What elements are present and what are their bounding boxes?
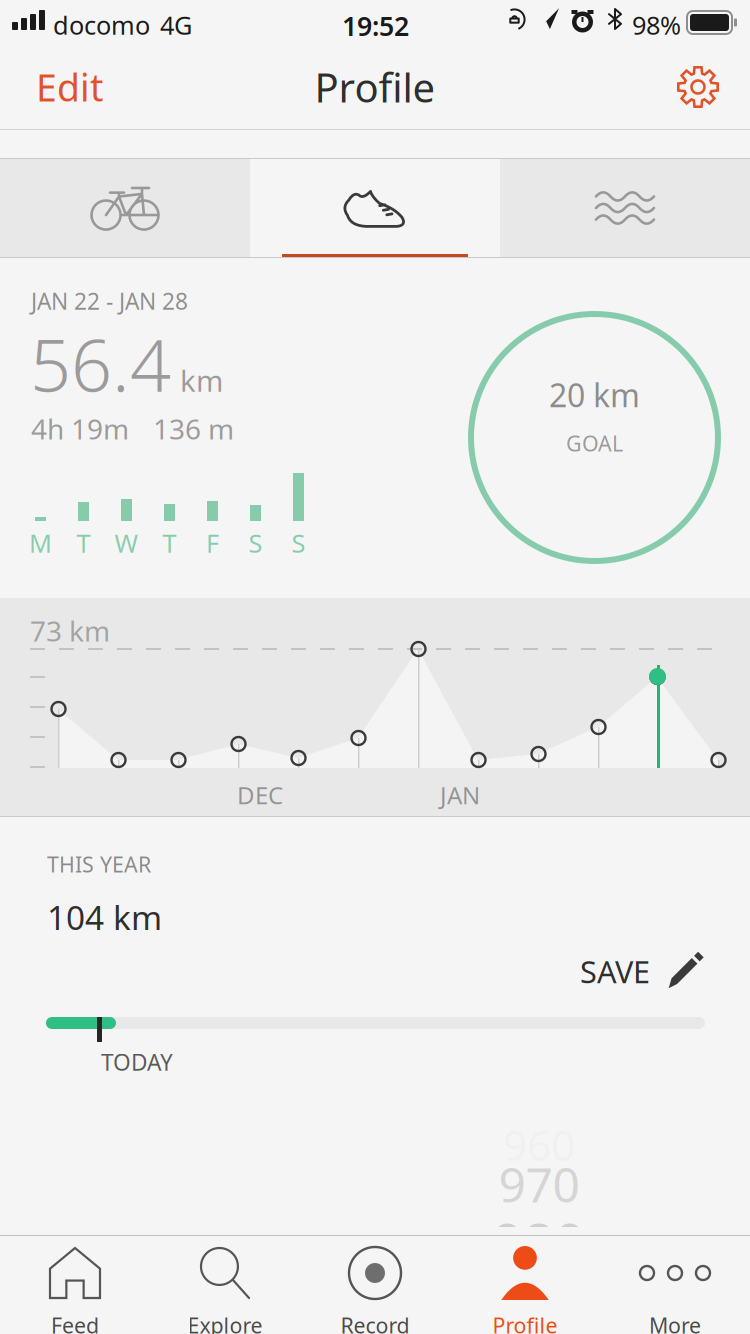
staticText: Record: [340, 1311, 409, 1334]
button[interactable]: Swimming: [500, 158, 750, 258]
staticText: T: [162, 526, 176, 560]
button[interactable]: SAVE: [568, 941, 715, 1002]
staticText: 136 m: [153, 410, 234, 447]
staticText: More: [649, 1311, 701, 1334]
staticText: Edit: [36, 62, 103, 112]
staticText: Feed: [51, 1311, 99, 1334]
staticText: S: [248, 526, 262, 560]
staticText: Profile: [314, 60, 435, 113]
button[interactable]: Settings: [654, 44, 750, 130]
staticText: 960: [503, 1116, 575, 1173]
staticText: Explore: [187, 1311, 262, 1334]
staticText: DEC: [237, 779, 283, 811]
staticText: THIS YEAR: [47, 850, 151, 878]
staticText: TODAY: [101, 1047, 173, 1077]
staticText: 20 km: [549, 374, 640, 416]
button[interactable]: Profile: [450, 1235, 600, 1334]
staticText: JAN 22 - JAN 28: [31, 286, 188, 316]
button[interactable]: Feed: [0, 1235, 150, 1334]
staticText: F: [206, 526, 219, 560]
button[interactable]: Running: [250, 158, 500, 258]
staticText: 19:52: [342, 8, 409, 43]
staticText: 980: [492, 1206, 585, 1277]
button[interactable]: More: [600, 1235, 750, 1334]
staticText: T: [76, 526, 90, 560]
staticText: M: [29, 526, 52, 560]
staticText: S: [291, 526, 305, 560]
staticText: 4h 19m: [31, 410, 129, 447]
button[interactable]: Edit: [0, 44, 125, 130]
staticText: 98%: [632, 8, 681, 42]
staticText: JAN: [440, 779, 480, 811]
staticText: W: [114, 526, 138, 560]
staticText: Profile: [492, 1311, 557, 1334]
staticText: 4G: [160, 8, 192, 42]
staticText: 970: [498, 1152, 579, 1216]
button[interactable]: Cycling: [0, 158, 250, 258]
staticText: 73 km: [30, 612, 110, 649]
button[interactable]: Record: [300, 1235, 450, 1334]
staticText: km: [180, 361, 223, 400]
staticText: GOAL: [566, 429, 623, 457]
staticText: SAVE: [580, 951, 650, 992]
staticText: 104 km: [47, 895, 162, 939]
button[interactable]: Explore: [150, 1235, 300, 1334]
staticText: docomo: [53, 8, 150, 42]
staticText: 56.4: [30, 316, 171, 412]
